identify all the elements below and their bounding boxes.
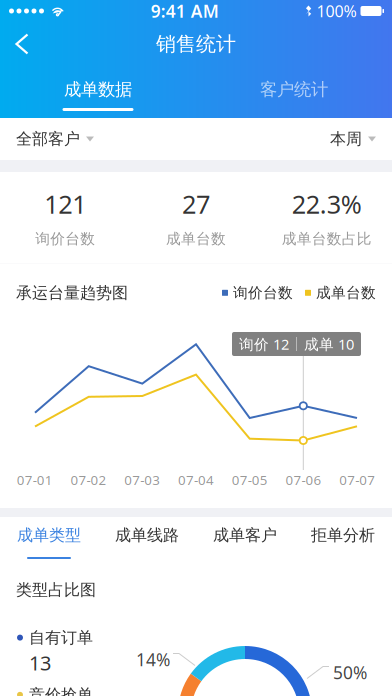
- button[interactable]: 拒单分析: [294, 517, 392, 561]
- staticText: 本周: [330, 129, 362, 149]
- button[interactable]: 全部客户: [16, 119, 94, 159]
- button[interactable]: 成单线路: [98, 517, 196, 561]
- staticText: 9:41 AM: [151, 0, 219, 22]
- button[interactable]: 本周: [330, 119, 376, 159]
- staticText: 竞价抢单: [29, 685, 93, 696]
- staticText: 07-02: [71, 471, 107, 489]
- button[interactable]: 成单类型: [0, 517, 98, 561]
- staticText: 询价 12: [239, 334, 289, 354]
- staticText: 成单台数占比: [282, 230, 372, 248]
- staticText: 07-07: [339, 471, 375, 489]
- staticText: 50%: [333, 661, 367, 684]
- staticText: 22.3%: [292, 187, 362, 221]
- button[interactable]: 客户统计: [196, 66, 392, 118]
- staticText: 自有订单: [29, 628, 93, 647]
- staticText: 27: [182, 187, 210, 221]
- staticText: 成单 10: [304, 334, 354, 354]
- staticText: 成单数据: [64, 79, 132, 100]
- button[interactable]: 成单客户: [196, 517, 294, 561]
- staticText: 07-03: [124, 471, 160, 489]
- staticText: 成单台数: [166, 230, 226, 248]
- staticText: 13: [29, 649, 51, 676]
- staticText: 类型占比图: [16, 580, 96, 600]
- staticText: 07-06: [285, 471, 321, 489]
- staticText: 拒单分析: [311, 525, 375, 545]
- staticText: 07-01: [17, 471, 53, 489]
- staticText: 销售统计: [156, 32, 236, 56]
- staticText: 成单线路: [115, 525, 179, 545]
- button[interactable]: Back: [0, 22, 44, 66]
- button[interactable]: 成单数据: [0, 66, 196, 118]
- staticText: 询价台数: [233, 284, 293, 302]
- staticText: 成单台数: [316, 284, 376, 302]
- staticText: 100%: [316, 0, 356, 22]
- staticText: 成单客户: [213, 525, 277, 545]
- staticText: 全部客户: [16, 129, 80, 149]
- staticText: 121: [44, 187, 86, 221]
- staticText: 承运台量趋势图: [16, 283, 128, 303]
- staticText: 07-04: [178, 471, 214, 489]
- staticText: 14%: [136, 648, 170, 671]
- staticText: 成单类型: [17, 525, 81, 545]
- staticText: 客户统计: [260, 79, 328, 100]
- staticText: 07-05: [232, 471, 268, 489]
- staticText: 询价台数: [35, 230, 95, 248]
